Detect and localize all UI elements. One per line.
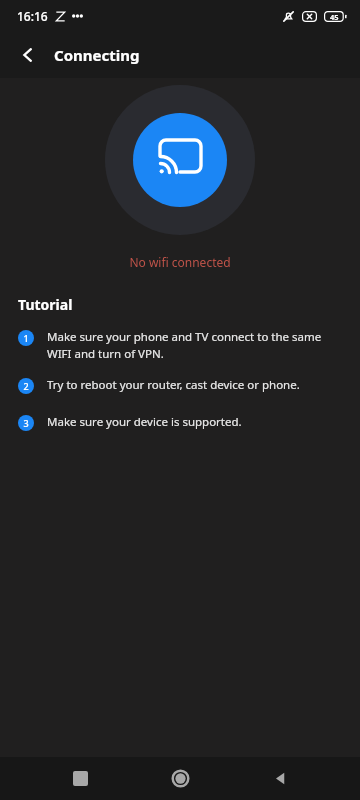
staticText: Connecting (54, 45, 140, 65)
button[interactable]: Home (130, 757, 230, 800)
button[interactable]: Back (230, 757, 330, 800)
staticText: Try to reboot your router, cast device o… (47, 377, 300, 393)
button[interactable]: Recent apps (30, 757, 130, 800)
staticText: 45 (330, 12, 339, 22)
button[interactable]: Back (8, 35, 48, 75)
staticText: Make sure your device is supported. (47, 414, 242, 430)
button[interactable]: 2 (0, 374, 360, 397)
staticText: Tutorial (18, 295, 73, 314)
button[interactable]: Start casting (105, 85, 255, 235)
staticText: 16:16 (17, 8, 48, 24)
button[interactable]: 3 (0, 411, 360, 434)
staticText: Make sure your phone and TV connect to t… (47, 329, 340, 361)
staticText: 2 (23, 380, 29, 392)
staticText: 1 (23, 332, 29, 344)
button[interactable]: 1 (0, 326, 360, 364)
staticText: No wifi connected (0, 254, 360, 270)
staticText: 3 (23, 417, 29, 429)
